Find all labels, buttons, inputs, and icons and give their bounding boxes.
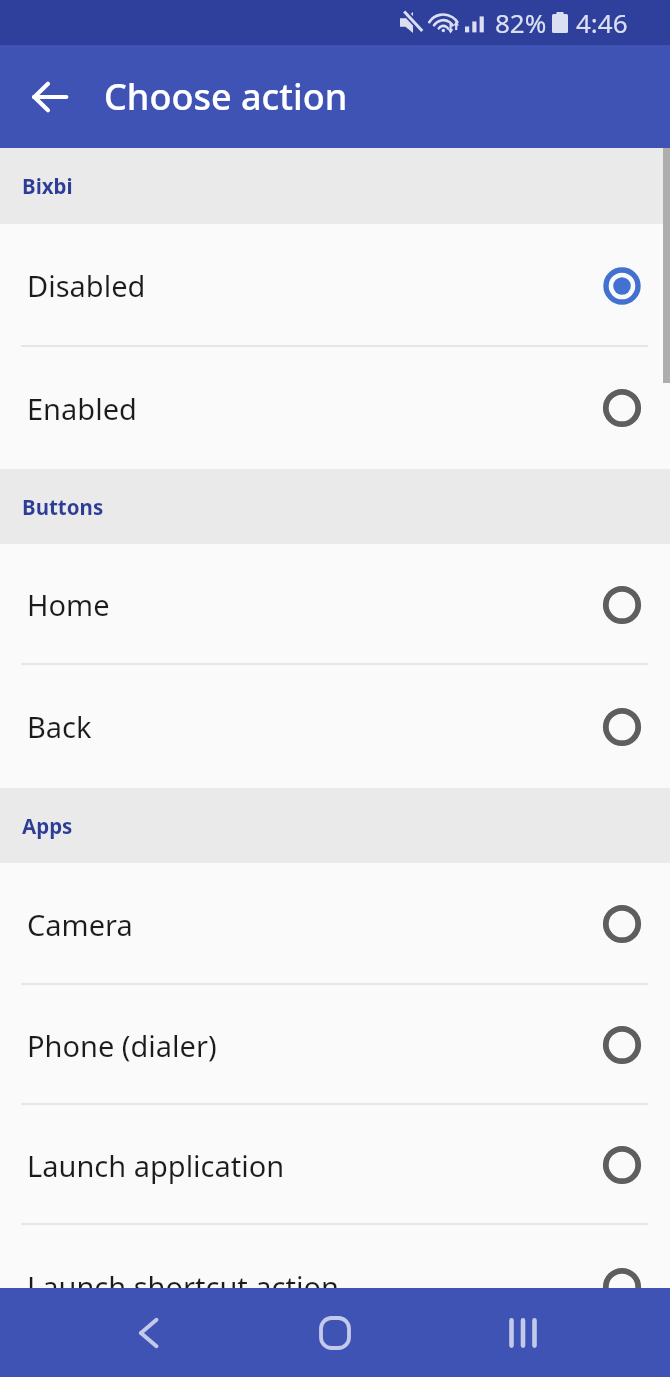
button[interactable]: Home: [295, 1293, 375, 1373]
staticText: Back: [27, 707, 92, 746]
button[interactable]: Camera: [0, 863, 670, 985]
button[interactable]: Phone (dialer): [0, 985, 670, 1105]
button[interactable]: Enabled: [0, 347, 670, 469]
staticText: Camera: [27, 905, 133, 944]
staticText: Bixbi: [22, 172, 73, 200]
staticText: Launch shortcut action: [27, 1267, 339, 1288]
staticText: 82%: [495, 5, 547, 40]
button[interactable]: Back: [0, 665, 670, 788]
button[interactable]: Back: [108, 1293, 188, 1373]
staticText: Phone (dialer): [27, 1026, 217, 1065]
staticText: Apps: [22, 812, 73, 840]
button[interactable]: Launch application: [0, 1105, 670, 1225]
staticText: Enabled: [27, 389, 137, 428]
button[interactable]: Recent apps: [483, 1293, 563, 1373]
staticText: 4:46: [576, 5, 628, 40]
button[interactable]: Home: [0, 544, 670, 665]
button[interactable]: Launch shortcut action: [0, 1225, 670, 1288]
button[interactable]: Navigate up: [16, 63, 84, 131]
staticText: Disabled: [27, 266, 146, 305]
staticText: Home: [27, 585, 110, 624]
staticText: Choose action: [104, 72, 348, 121]
staticText: Buttons: [22, 493, 104, 521]
button[interactable]: Disabled: [0, 224, 670, 347]
staticText: Launch application: [27, 1146, 285, 1185]
